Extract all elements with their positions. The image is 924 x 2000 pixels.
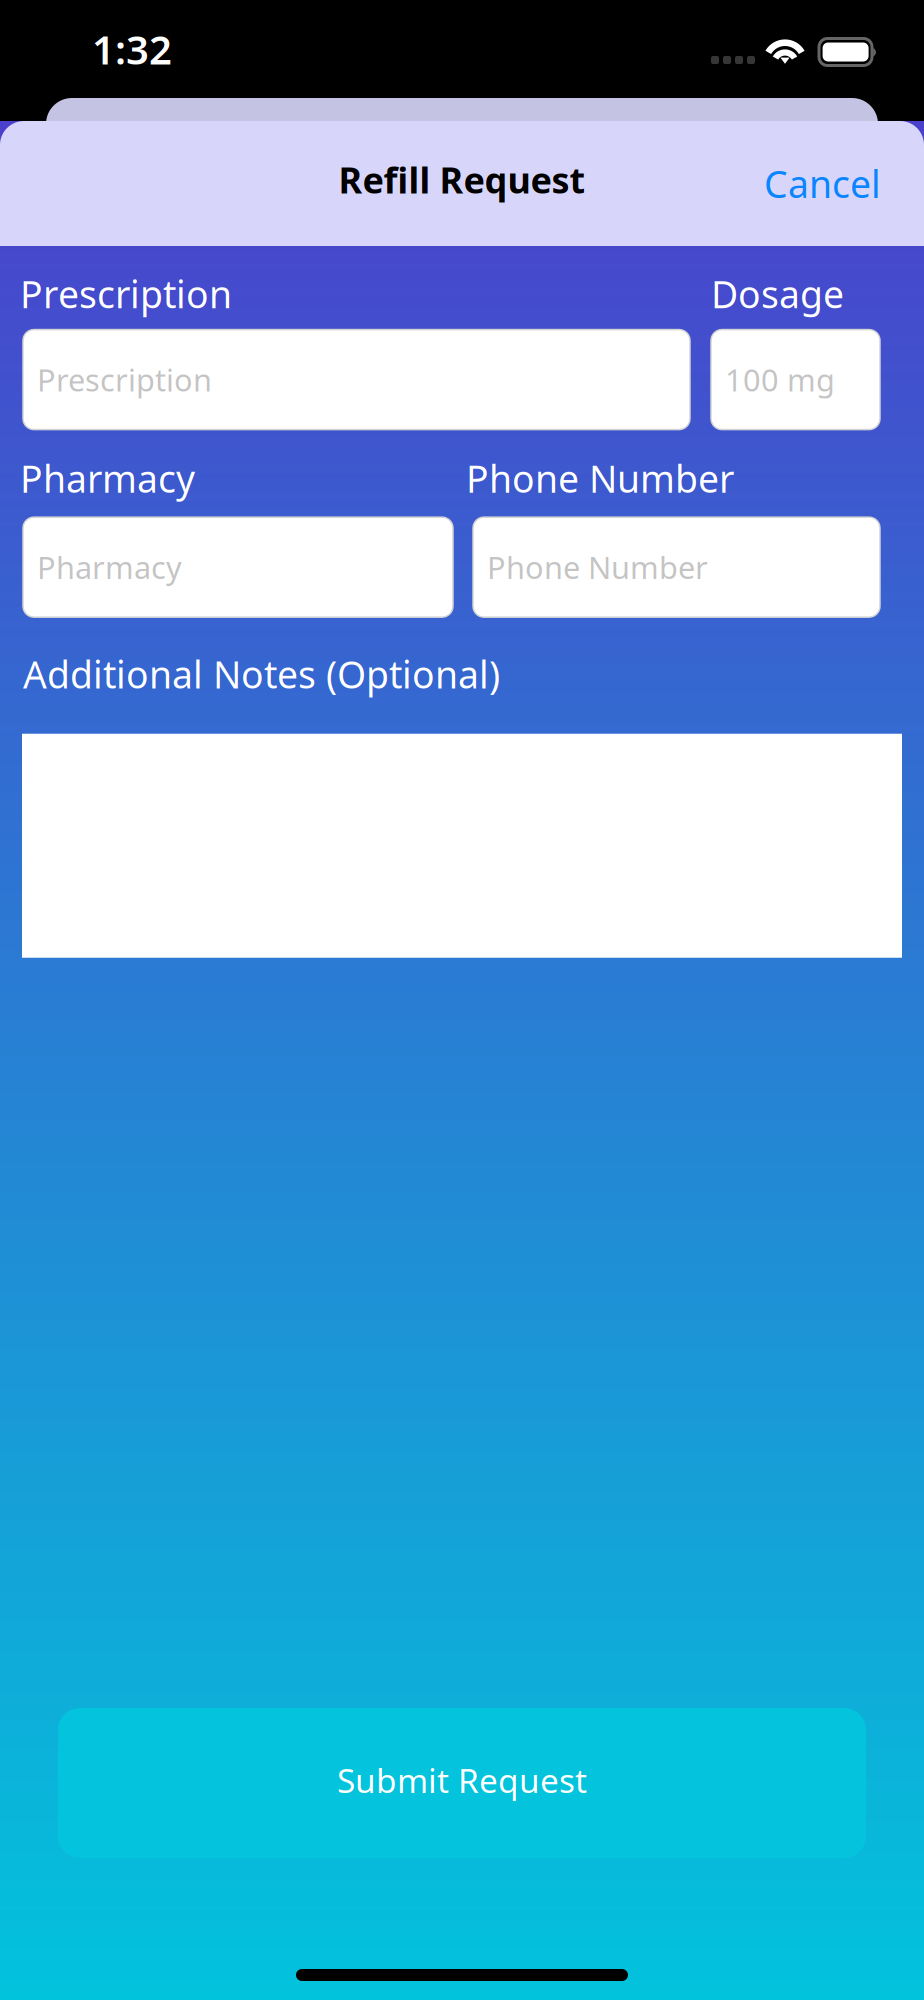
button[interactable]: Additional Notes — [22, 734, 902, 958]
staticText: 1:32 — [92, 22, 172, 75]
button[interactable]: Submit Request — [58, 1708, 866, 1858]
button[interactable]: Phone Number — [473, 517, 880, 617]
staticText: Cancel — [764, 159, 881, 208]
staticText: Submit Request — [337, 1758, 587, 1802]
button[interactable]: Prescription — [23, 330, 690, 430]
staticText: Pharmacy — [20, 454, 195, 503]
button[interactable]: Pharmacy — [23, 517, 453, 617]
staticText: Prescription — [20, 269, 232, 319]
staticText: Additional Notes (Optional) — [23, 649, 500, 699]
button[interactable]: 100 mg — [711, 330, 880, 430]
staticText: Dosage — [711, 269, 844, 319]
button[interactable]: Cancel — [740, 141, 905, 226]
staticText: Prescription — [37, 359, 212, 400]
staticText: Pharmacy — [37, 547, 182, 587]
staticText: Refill Request — [338, 156, 585, 203]
staticText: Phone Number — [466, 454, 734, 503]
staticText: Phone Number — [487, 547, 708, 587]
staticText: 100 mg — [725, 359, 835, 400]
